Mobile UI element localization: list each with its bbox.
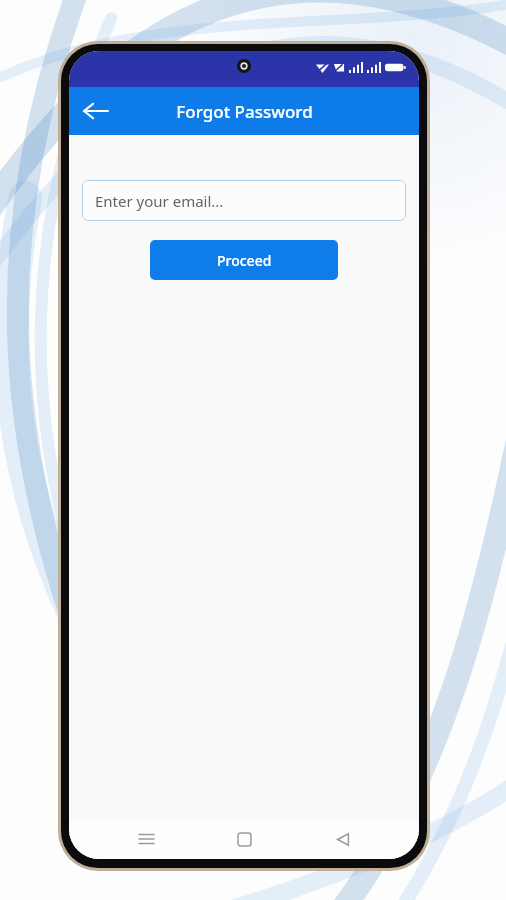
staticText: Enter your email...	[95, 191, 224, 211]
button[interactable]: Proceed	[150, 240, 338, 280]
button[interactable]: Enter your email...	[82, 180, 406, 221]
button[interactable]: Back	[75, 91, 115, 131]
button[interactable]: Back	[321, 819, 365, 859]
staticText: Proceed	[217, 251, 272, 270]
button[interactable]: Recent apps	[124, 819, 168, 859]
button[interactable]: Home	[222, 819, 266, 859]
staticText: Forgot Password	[176, 100, 313, 123]
